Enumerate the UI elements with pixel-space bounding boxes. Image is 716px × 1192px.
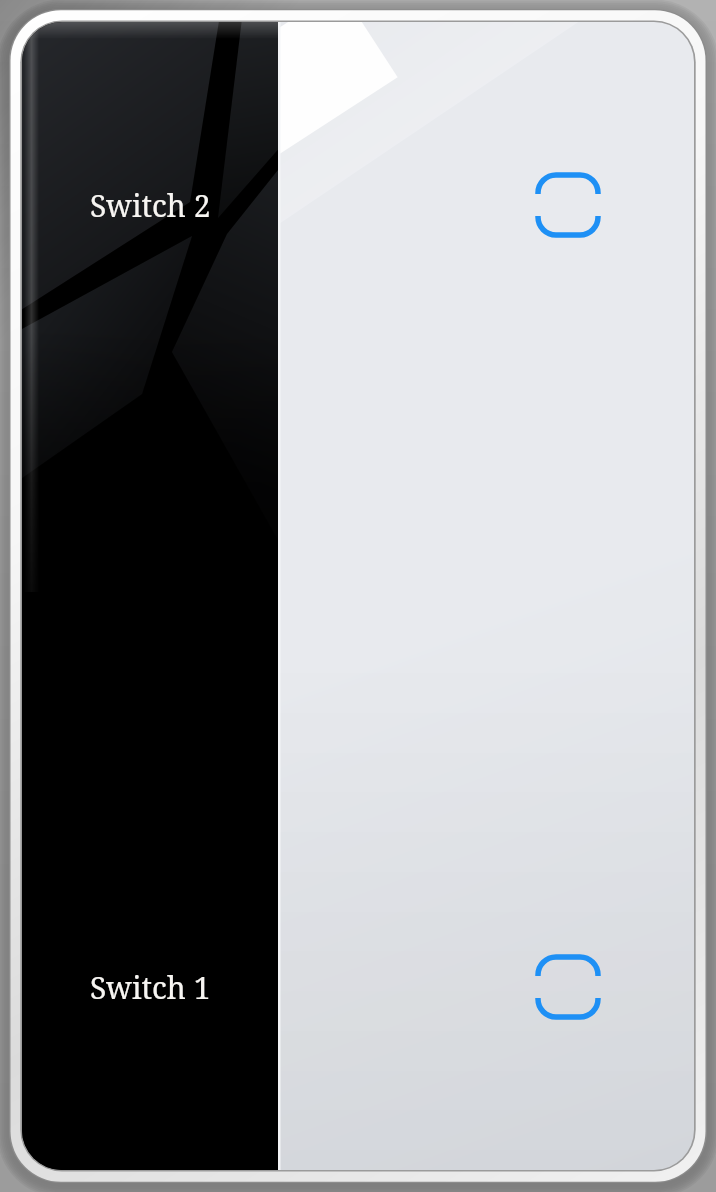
button[interactable]: Switch 1 xyxy=(0,921,716,1053)
button[interactable]: Toggle Switch 1 xyxy=(523,942,613,1032)
button[interactable]: Switch 2 xyxy=(0,139,716,271)
button[interactable]: Toggle Switch 2 xyxy=(523,160,613,250)
staticText: Switch 2 xyxy=(90,185,211,226)
staticText: Switch 1 xyxy=(90,967,211,1008)
